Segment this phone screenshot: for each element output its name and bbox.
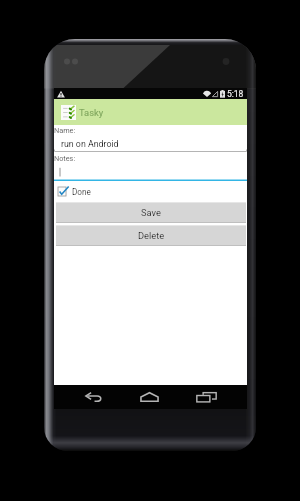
button[interactable] xyxy=(54,166,247,181)
staticText: run on Android xyxy=(61,139,119,149)
button[interactable]: Tasky xyxy=(54,99,247,125)
button[interactable]: Home xyxy=(131,385,167,409)
button[interactable]: Recent apps xyxy=(188,385,224,409)
button[interactable]: Back xyxy=(75,385,111,409)
staticText: Save xyxy=(141,207,161,218)
staticText: 5:18 xyxy=(227,89,244,99)
staticText: Tasky xyxy=(79,107,104,118)
button[interactable]: Save xyxy=(56,202,246,223)
staticText: Done xyxy=(72,187,91,197)
staticText: Delete xyxy=(138,230,165,241)
staticText: Name: xyxy=(54,126,76,135)
button[interactable]: run on Android xyxy=(54,137,247,152)
button[interactable]: Done xyxy=(58,185,91,198)
staticText: Notes: xyxy=(54,154,76,163)
button[interactable]: Delete xyxy=(56,225,246,246)
